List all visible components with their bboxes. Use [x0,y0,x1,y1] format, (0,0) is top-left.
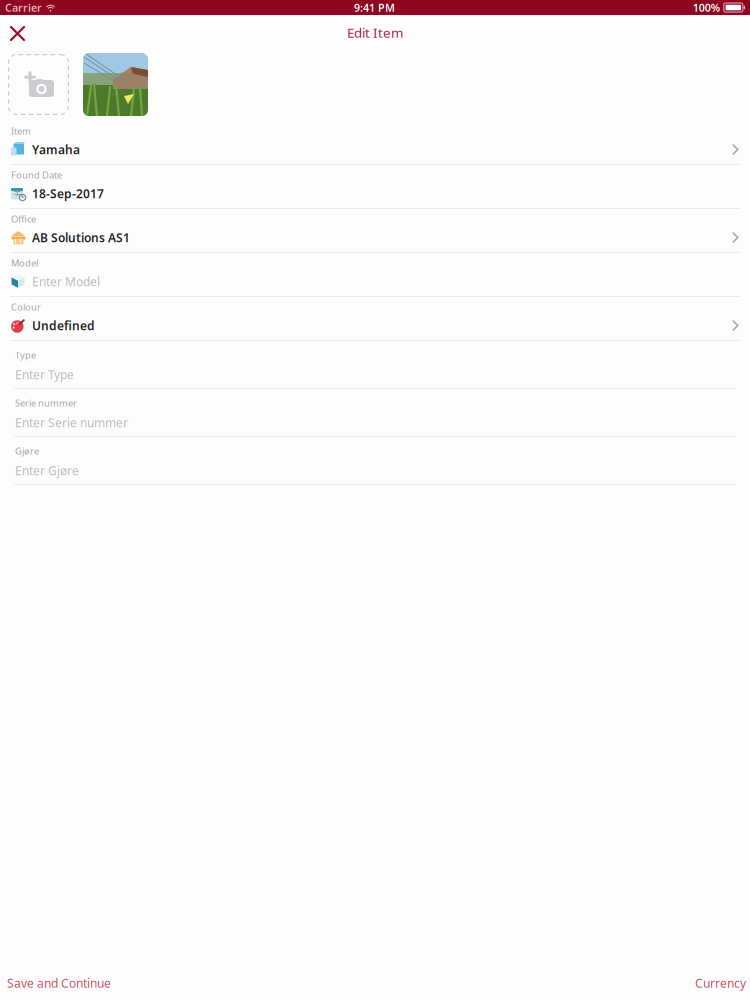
staticText: Item [11,125,31,137]
staticText: Edit Item [347,24,403,41]
staticText: Found Date [11,169,62,181]
button[interactable]: Type [0,341,750,389]
staticText: Gjøre [15,445,39,457]
staticText: Enter Model [32,273,100,289]
button[interactable]: Model [0,253,750,297]
button[interactable]: Office [0,209,750,253]
button[interactable]: Item [0,121,750,165]
button[interactable]: Currency [688,972,750,994]
staticText: AB Solutions AS1 [32,229,130,245]
staticText: Colour [11,301,41,313]
staticText: Serie nummer [15,397,77,409]
staticText: Model [11,257,38,269]
staticText: Save and Continue [7,975,111,991]
staticText: Enter Type [15,366,74,382]
staticText: Enter Gjøre [15,462,79,478]
staticText: Type [15,349,36,361]
button[interactable]: Photo [83,53,148,116]
staticText: Undefined [32,317,95,333]
staticText: 9:41 PM [354,0,395,15]
staticText: Carrier [5,0,42,15]
button[interactable]: Gjøre [0,437,750,485]
button[interactable]: Save and Continue [0,972,118,994]
button[interactable]: Colour [0,297,750,341]
button[interactable]: Found Date [0,165,750,209]
staticText: Yamaha [32,141,80,157]
staticText: Office [11,213,36,225]
staticText: Currency [695,975,746,991]
staticText: 18-Sep-2017 [32,185,104,201]
staticText: 100% [693,0,720,15]
button[interactable]: Add photo [8,54,69,115]
button[interactable]: Close [0,15,37,48]
button[interactable]: Serie nummer [0,389,750,437]
staticText: Enter Serie nummer [15,414,128,430]
